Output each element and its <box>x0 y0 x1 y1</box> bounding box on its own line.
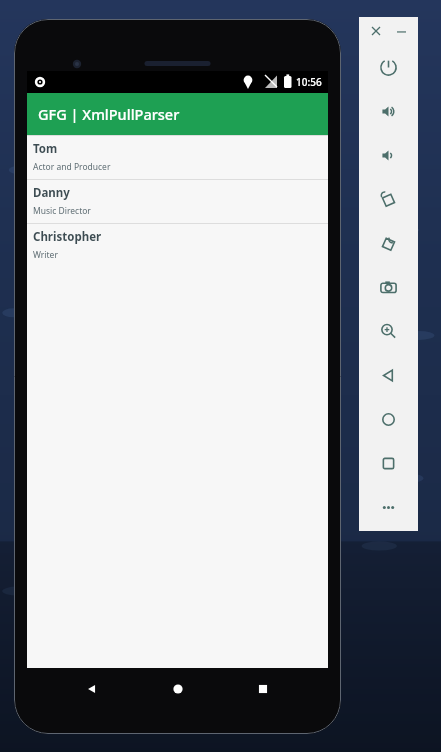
button[interactable]: Zoom <box>359 309 418 353</box>
button[interactable]: Volume down <box>359 133 418 177</box>
button[interactable]: Take screenshot <box>359 265 418 309</box>
button[interactable]: Home <box>359 397 418 441</box>
staticText: Actor and Producer <box>33 161 111 173</box>
button[interactable]: More <box>359 485 418 529</box>
button[interactable]: Volume up <box>359 89 418 133</box>
staticText: Danny <box>33 185 70 201</box>
staticText: Christopher <box>33 229 102 245</box>
staticText: GFG | XmlPullParser <box>38 104 180 124</box>
button[interactable]: Overview <box>359 441 418 485</box>
staticText: 10:56 <box>296 75 322 89</box>
button[interactable]: Minimize <box>392 22 410 40</box>
button[interactable]: Rotate right <box>359 221 418 265</box>
button[interactable]: Back <box>72 669 112 709</box>
button[interactable]: Close <box>367 22 385 40</box>
button[interactable]: Tom <box>27 136 328 179</box>
button[interactable]: Rotate left <box>359 177 418 221</box>
button[interactable]: Home <box>158 669 198 709</box>
staticText: Tom <box>33 141 58 157</box>
staticText: Writer <box>33 249 58 261</box>
button[interactable]: Recent apps <box>243 669 283 709</box>
button[interactable]: Danny <box>27 180 328 223</box>
button[interactable]: Power <box>359 45 418 89</box>
staticText: Music Director <box>33 205 91 217</box>
button[interactable]: GFG | XmlPullParser <box>27 93 328 135</box>
button[interactable]: Christopher <box>27 224 328 267</box>
button[interactable]: Back <box>359 353 418 397</box>
